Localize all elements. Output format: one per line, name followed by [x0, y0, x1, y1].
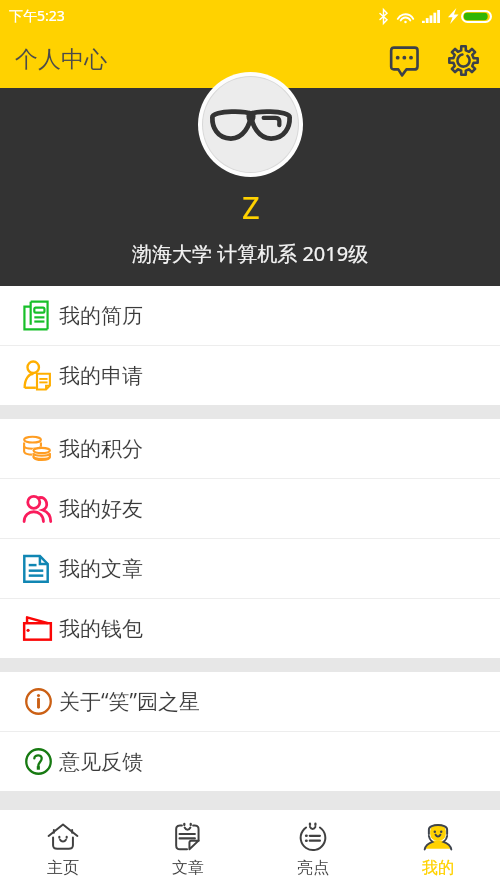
button[interactable]: 我的文章: [0, 539, 500, 598]
button[interactable]: 文章: [125, 810, 250, 888]
staticText: 我的简历: [59, 303, 143, 329]
staticText: 主页: [47, 858, 79, 878]
staticText: 我的申请: [59, 363, 143, 389]
staticText: 我的好友: [59, 496, 143, 522]
staticText: 文章: [172, 858, 204, 878]
button[interactable]: 意见反馈: [0, 732, 500, 791]
button[interactable]: 我的积分: [0, 419, 500, 478]
staticText: 我的钱包: [59, 616, 143, 642]
staticText: 个人中心: [15, 45, 107, 74]
button[interactable]: 亮点: [250, 810, 375, 888]
button[interactable]: 我的: [375, 810, 500, 888]
button[interactable]: 我的简历: [0, 286, 500, 345]
staticText: 下午5:23: [9, 6, 65, 25]
staticText: 亮点: [297, 858, 329, 878]
button[interactable]: Messages: [381, 37, 427, 83]
button[interactable]: 我的申请: [0, 346, 500, 405]
button[interactable]: 我的好友: [0, 479, 500, 538]
button[interactable]: Settings: [440, 37, 486, 83]
button[interactable]: 主页: [0, 810, 125, 888]
staticText: 我的文章: [59, 556, 143, 582]
button[interactable]: 关于“笑”园之星: [0, 672, 500, 731]
staticText: Z: [242, 186, 260, 228]
button[interactable]: 我的钱包: [0, 599, 500, 658]
staticText: 我的: [422, 858, 454, 878]
staticText: 关于“笑”园之星: [59, 687, 201, 716]
staticText: 我的积分: [59, 436, 143, 462]
staticText: 意见反馈: [59, 749, 143, 775]
staticText: 渤海大学 计算机系 2019级: [132, 240, 369, 267]
